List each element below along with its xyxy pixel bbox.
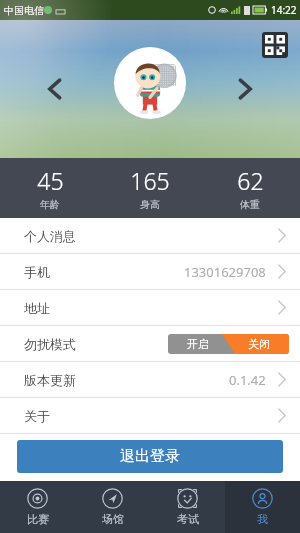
- staticText: 我: [257, 512, 268, 526]
- staticText: 中国电信: [4, 4, 44, 17]
- staticText: 退出登录: [120, 447, 180, 466]
- button[interactable]: QR code: [262, 32, 288, 58]
- button[interactable]: 手机: [0, 254, 300, 290]
- staticText: 165: [130, 165, 170, 196]
- staticText: 13301629708: [184, 263, 266, 281]
- staticText: 关于: [24, 408, 50, 424]
- staticText: 关闭: [248, 337, 270, 351]
- staticText: 版本更新: [24, 372, 76, 388]
- staticText: 考试: [177, 512, 199, 526]
- staticText: 0.1.42: [229, 371, 266, 389]
- button[interactable]: 地址: [0, 290, 300, 326]
- button[interactable]: Previous: [42, 76, 68, 102]
- staticText: 比赛: [27, 512, 49, 526]
- button[interactable]: 个人消息: [0, 218, 300, 254]
- button[interactable]: Profile avatar: [114, 47, 186, 119]
- staticText: 场馆: [102, 512, 124, 526]
- button[interactable]: 比赛: [0, 481, 75, 533]
- staticText: 手机: [24, 264, 50, 280]
- button[interactable]: 退出登录: [17, 440, 283, 473]
- staticText: 体重: [240, 198, 260, 211]
- staticText: 14:22: [271, 3, 297, 17]
- button[interactable]: 版本更新: [0, 362, 300, 398]
- staticText: 年龄: [40, 198, 60, 211]
- staticText: 62: [237, 165, 264, 196]
- staticText: 身高: [140, 198, 160, 211]
- staticText: 45: [37, 165, 64, 196]
- staticText: 个人消息: [24, 228, 76, 244]
- button[interactable]: Next: [232, 76, 258, 102]
- button[interactable]: 场馆: [75, 481, 150, 533]
- staticText: 开启: [187, 337, 209, 351]
- staticText: 地址: [24, 300, 50, 316]
- button[interactable]: 我: [225, 481, 300, 533]
- staticText: 勿扰模式: [24, 336, 76, 352]
- button[interactable]: 考试: [150, 481, 225, 533]
- button[interactable]: 开启: [168, 334, 289, 354]
- button[interactable]: 关于: [0, 398, 300, 434]
